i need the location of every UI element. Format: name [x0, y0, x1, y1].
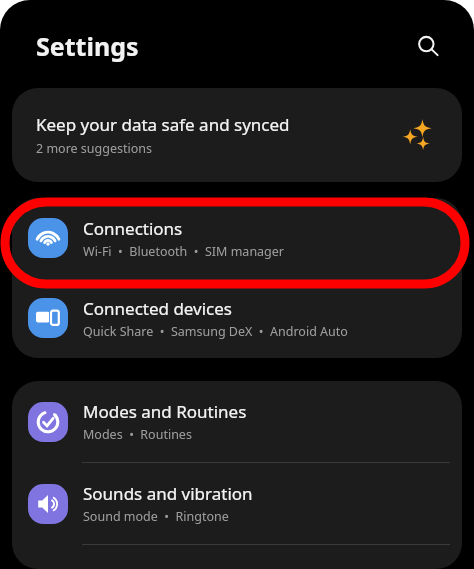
staticText: Quick Share • Samsung DeX • Android Auto — [83, 323, 348, 340]
staticText: Settings — [36, 29, 139, 63]
button[interactable]: Connected devices — [12, 278, 462, 358]
button[interactable]: Modes and Routines — [12, 381, 462, 462]
staticText: Modes and Routines — [83, 400, 247, 423]
staticText: Connections — [83, 217, 183, 240]
button[interactable]: Sounds and vibration — [12, 463, 462, 544]
staticText: Sounds and vibration — [83, 482, 253, 505]
staticText: Wi-Fi • Bluetooth • SIM manager — [83, 243, 285, 260]
staticText: 2 more suggestions — [36, 140, 153, 157]
button[interactable]: Keep your data safe and synced — [12, 88, 462, 182]
staticText: Modes • Routines — [83, 426, 192, 443]
button[interactable]: Search settings — [408, 26, 448, 66]
staticText: Keep your data safe and synced — [36, 113, 290, 136]
staticText: Connected devices — [83, 297, 233, 320]
button[interactable]: Connections — [12, 198, 462, 278]
staticText: Sound mode • Ringtone — [83, 508, 229, 525]
